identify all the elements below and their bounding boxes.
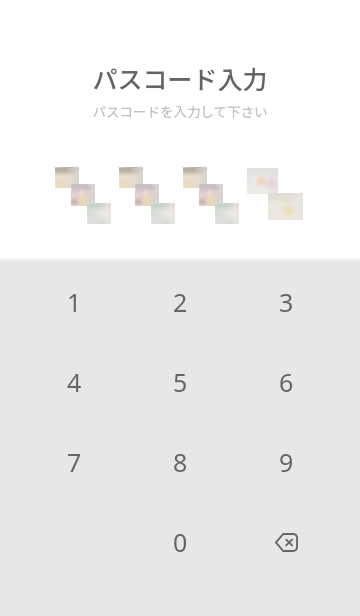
staticText: 4 <box>67 365 82 399</box>
button[interactable]: 3 <box>254 270 318 334</box>
button[interactable]: 2 <box>148 270 212 334</box>
staticText: 6 <box>279 365 294 399</box>
button[interactable]: 5 <box>148 350 212 414</box>
staticText: 2 <box>173 285 188 319</box>
button[interactable]: 1 <box>42 270 106 334</box>
staticText: 9 <box>279 445 294 479</box>
staticText: 1 <box>67 285 82 319</box>
staticText: 8 <box>173 445 188 479</box>
button[interactable]: 4 <box>42 350 106 414</box>
button[interactable]: 8 <box>148 430 212 494</box>
staticText: 5 <box>173 365 188 399</box>
staticText: 7 <box>67 445 82 479</box>
button[interactable]: 9 <box>254 430 318 494</box>
staticText: 3 <box>279 285 294 319</box>
button[interactable]: 6 <box>254 350 318 414</box>
button[interactable]: Backspace <box>254 510 318 574</box>
button[interactable]: 7 <box>42 430 106 494</box>
staticText: パスコード入力 <box>92 60 268 96</box>
staticText: 0 <box>173 525 188 559</box>
button[interactable]: 0 <box>148 510 212 574</box>
staticText: パスコードを入力して下さい <box>92 101 268 121</box>
